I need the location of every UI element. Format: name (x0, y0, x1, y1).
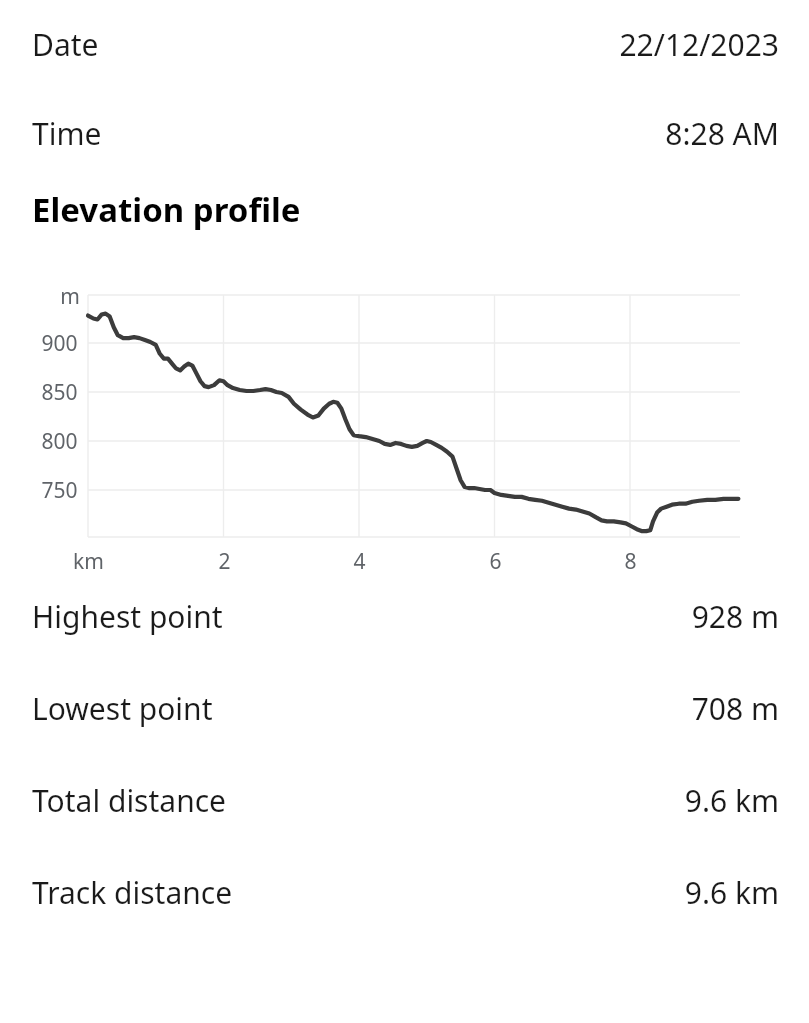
button[interactable]: Time (0, 88, 809, 178)
staticText: 4 (353, 547, 366, 570)
staticText: 800 (41, 427, 78, 456)
staticText: km (73, 547, 104, 570)
staticText: m (60, 282, 80, 311)
staticText: 850 (41, 378, 78, 407)
staticText: 9.6 km (684, 780, 779, 821)
staticText: 2 (218, 547, 231, 570)
staticText: Track distance (32, 872, 233, 913)
button[interactable]: Lowest point (0, 662, 809, 754)
staticText: Highest point (32, 596, 223, 637)
staticText: 9.6 km (684, 872, 779, 913)
staticText: 6 (489, 547, 502, 570)
staticText: Elevation profile (32, 187, 301, 232)
staticText: 928 m (691, 596, 779, 637)
staticText: Total distance (32, 780, 227, 821)
button[interactable]: Highest point (0, 570, 809, 662)
staticText: 708 m (691, 688, 779, 729)
button[interactable]: Date (0, 0, 809, 88)
staticText: 8:28 AM (665, 113, 779, 154)
button[interactable]: Track distance (0, 846, 809, 938)
staticText: 900 (41, 329, 78, 358)
button[interactable]: Total distance (0, 754, 809, 846)
staticText: Time (32, 113, 102, 154)
staticText: Lowest point (32, 688, 213, 729)
staticText: Date (32, 24, 99, 65)
staticText: 22/12/2023 (619, 24, 779, 65)
staticText: 8 (624, 547, 637, 570)
staticText: 750 (41, 476, 78, 505)
